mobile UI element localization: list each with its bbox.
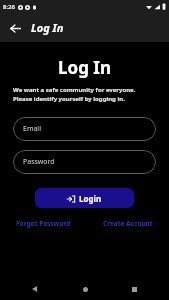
staticText: Email — [23, 124, 41, 134]
button[interactable]: Forgot Password — [13, 217, 74, 230]
button[interactable]: Login — [35, 188, 134, 208]
staticText: Forgot Password — [16, 219, 71, 228]
staticText: Login — [79, 193, 102, 204]
staticText: 8:26 — [3, 3, 15, 11]
staticText: We want a safe community for everyone. P… — [13, 86, 156, 103]
button[interactable]: Recent apps — [125, 280, 143, 298]
button[interactable]: Back — [5, 18, 25, 38]
staticText: Password — [23, 157, 55, 167]
button[interactable]: Home — [76, 280, 94, 298]
button[interactable]: Email — [13, 117, 156, 141]
staticText: Log In — [31, 20, 64, 35]
button[interactable]: Create Account — [100, 217, 156, 230]
button[interactable]: Back — [26, 280, 44, 298]
button[interactable]: Password — [13, 150, 156, 174]
staticText: Create Account — [103, 219, 153, 228]
staticText: Log In — [58, 56, 111, 79]
